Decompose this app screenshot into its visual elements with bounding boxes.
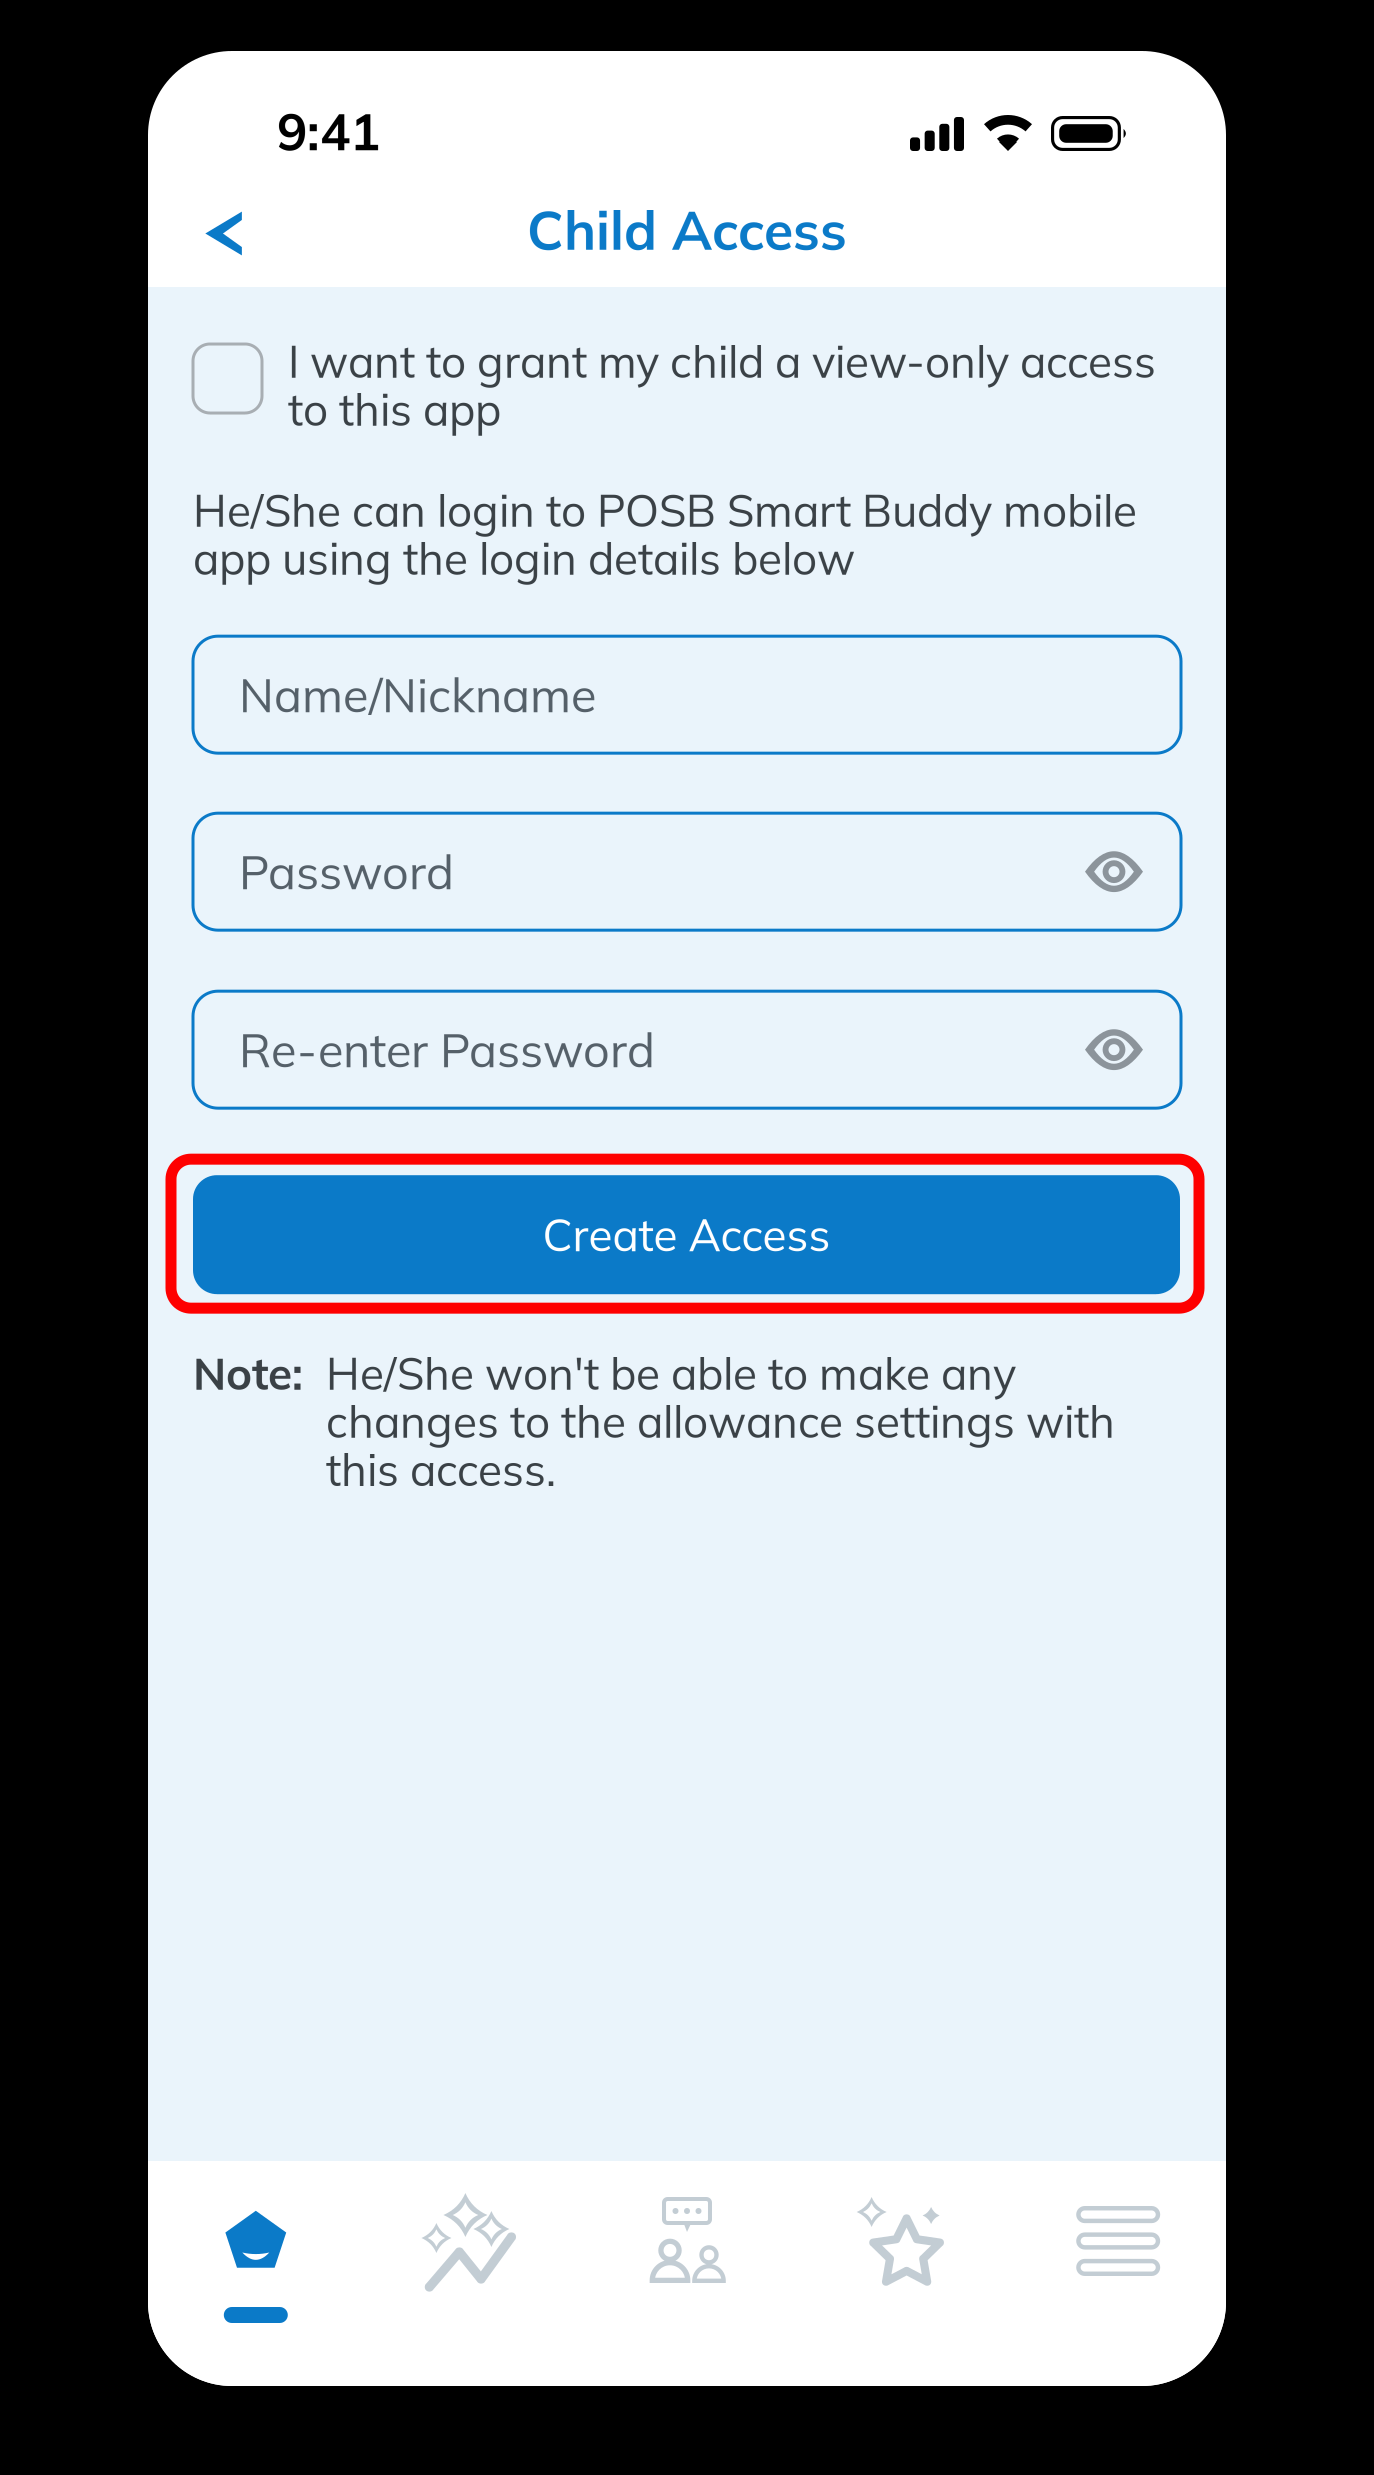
staticText: He/She can login to POSB Smart Buddy mob… <box>193 486 1137 582</box>
staticText: Name/Nickname <box>239 665 596 724</box>
button[interactable]: Back <box>148 183 281 283</box>
staticText: Re-enter Password <box>239 1020 655 1079</box>
staticText: Note: <box>193 1349 303 1397</box>
button[interactable]: Show password <box>1085 1031 1143 1069</box>
button[interactable]: Buddy <box>148 2191 364 2386</box>
button[interactable]: Grant view-only access <box>193 344 262 413</box>
staticText: 9:41 <box>277 99 380 163</box>
button[interactable]: Insights <box>364 2191 579 2386</box>
button[interactable]: More <box>1010 2191 1226 2386</box>
staticText: He/She won't be able to make any changes… <box>326 1349 1115 1493</box>
button[interactable]: Chat <box>579 2191 795 2386</box>
staticText: Password <box>239 842 454 901</box>
staticText: I want to grant my child a view-only acc… <box>288 337 1156 433</box>
button[interactable]: Create Access <box>171 1159 1199 1308</box>
staticText: Create Access <box>542 1207 830 1262</box>
staticText: Child Access <box>527 196 847 263</box>
button[interactable]: Show password <box>1085 853 1143 891</box>
button[interactable]: Rewards <box>795 2191 1010 2386</box>
